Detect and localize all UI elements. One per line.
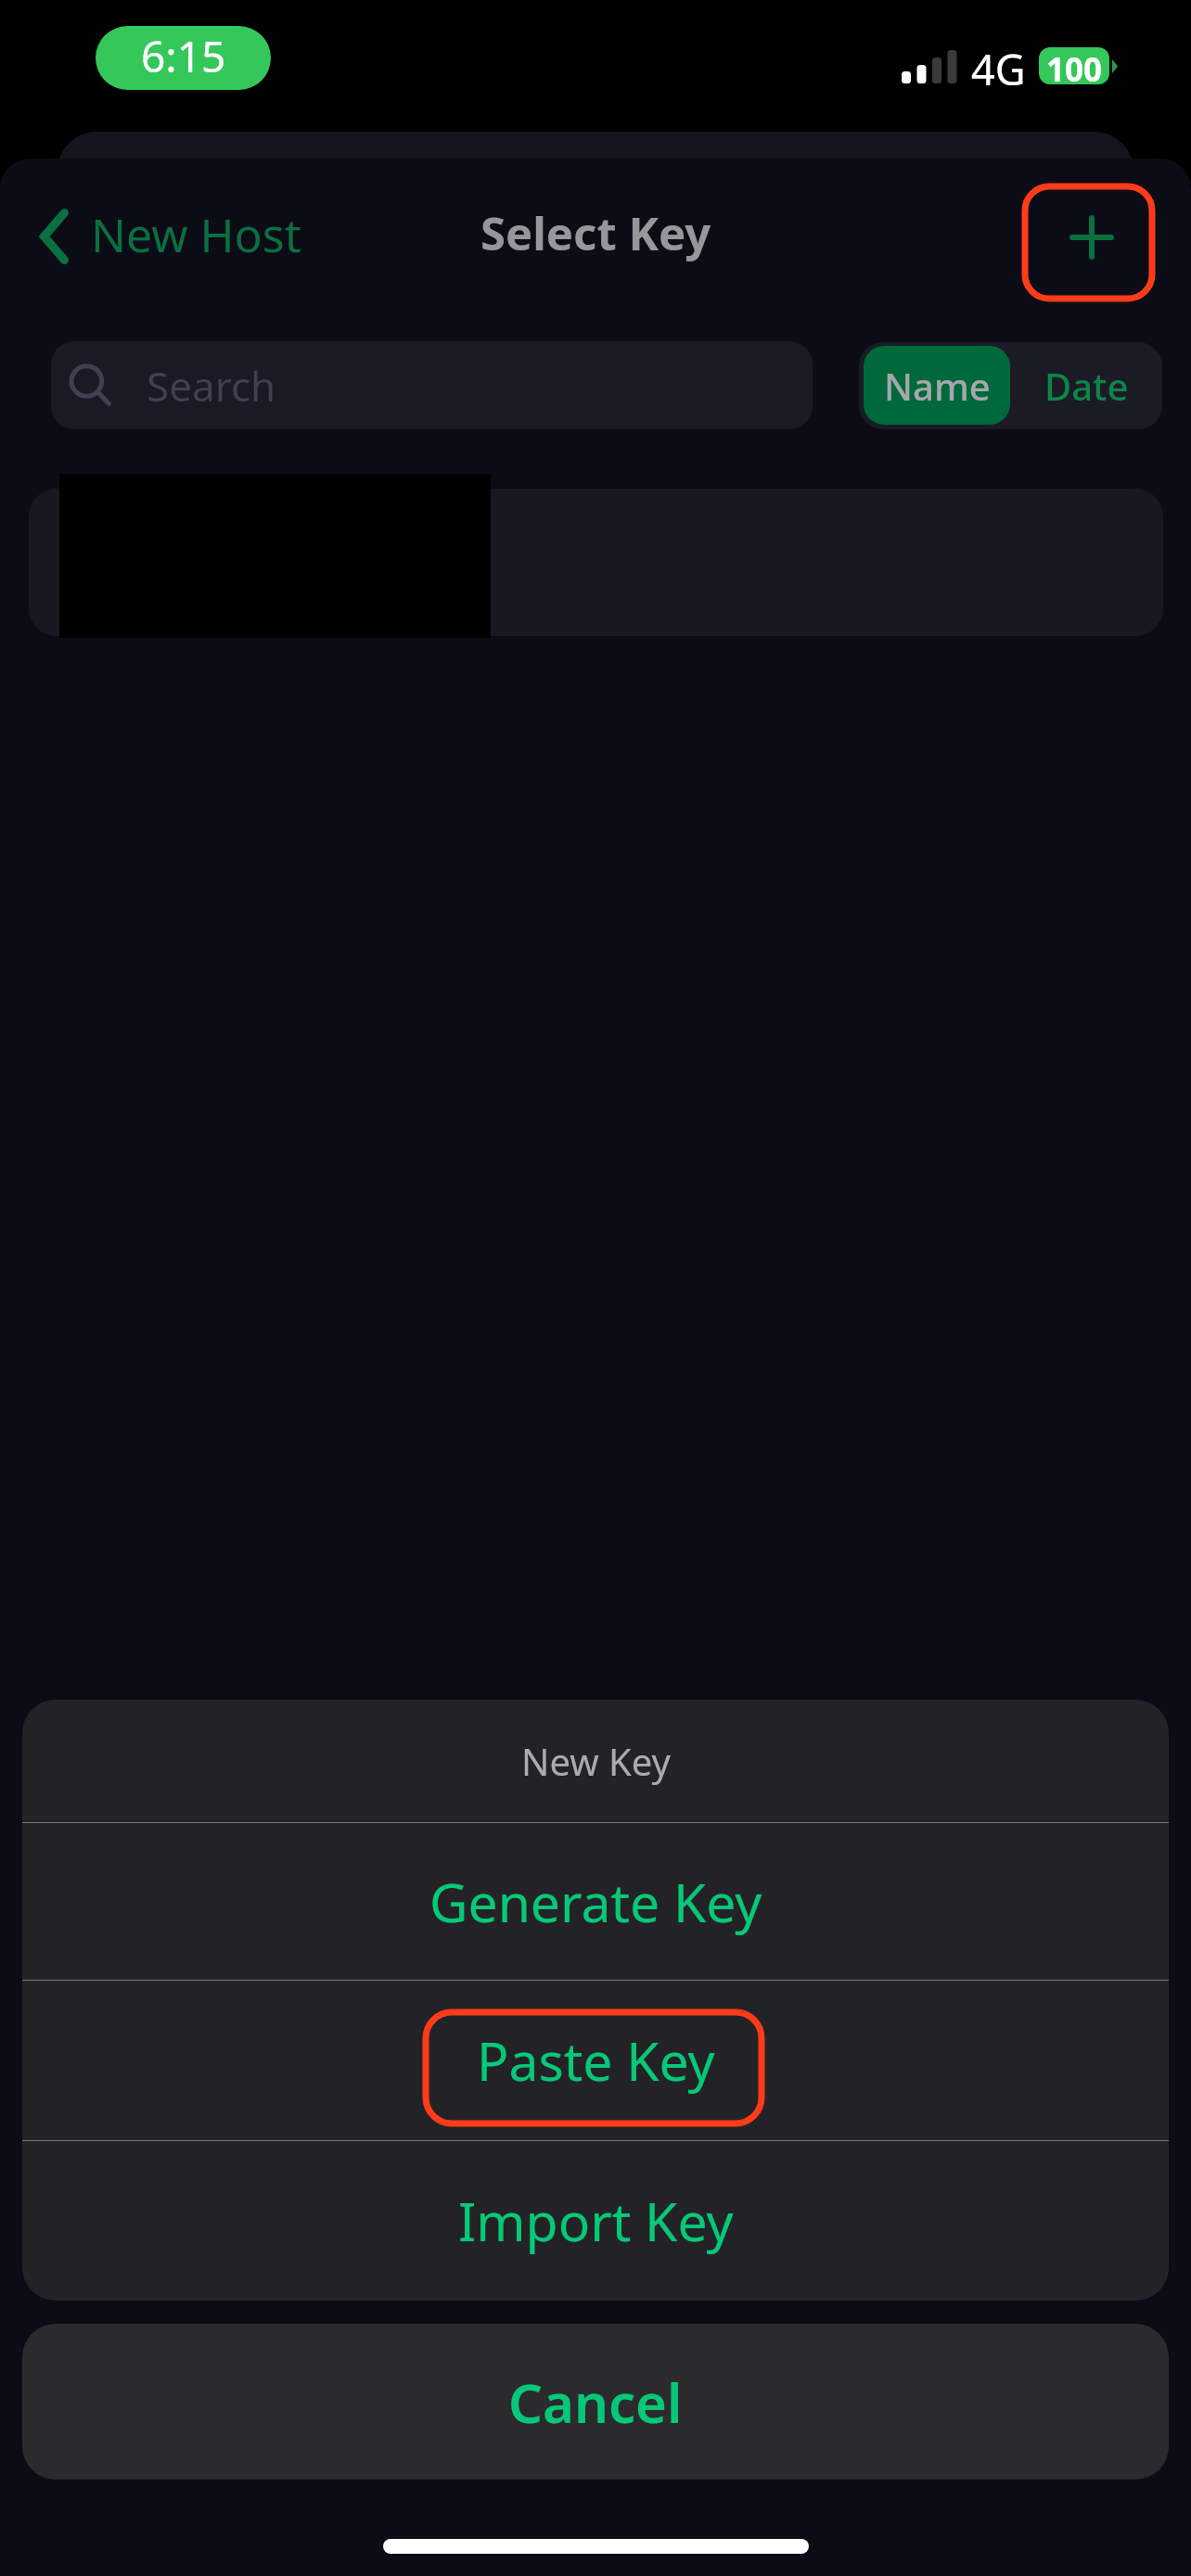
staticText: Cancel <box>508 2366 683 2439</box>
staticText: Paste Key <box>477 2024 715 2097</box>
staticText: Date <box>1044 361 1129 411</box>
staticText: Generate Key <box>429 1866 762 1938</box>
button[interactable]: Paste Key <box>22 1981 1169 2140</box>
staticText: 4G <box>971 41 1026 97</box>
button[interactable]: Add key <box>1023 183 1156 299</box>
button[interactable]: Date <box>1010 342 1162 429</box>
staticText: Name <box>884 361 991 411</box>
staticText: New Host <box>91 203 301 266</box>
staticText: Select Key <box>480 202 711 264</box>
button[interactable]: Cancel <box>22 2324 1169 2480</box>
button[interactable]: Search <box>51 341 813 429</box>
button[interactable] <box>29 489 1163 636</box>
button[interactable]: Import Key <box>22 2141 1169 2301</box>
button[interactable]: Generate Key <box>22 1823 1169 1980</box>
staticText: 6:15 <box>141 27 226 85</box>
staticText: Import Key <box>458 2185 734 2257</box>
staticText: New Key <box>521 1736 671 1786</box>
staticText: Search <box>147 358 276 414</box>
button[interactable]: New Host <box>27 188 313 281</box>
staticText: 100 <box>1046 47 1103 84</box>
button[interactable]: Name <box>864 346 1010 425</box>
